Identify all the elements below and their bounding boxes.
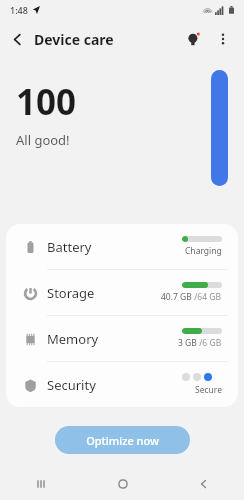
staticText: /6 GB [197, 337, 222, 349]
button[interactable]: Tips [178, 24, 208, 54]
staticText: Battery [47, 238, 92, 256]
staticText: All good! [16, 131, 70, 149]
button[interactable]: Home [82, 467, 163, 500]
button[interactable]: Storage [6, 270, 238, 315]
staticText: Device care [34, 30, 114, 49]
staticText: Optimize now [86, 433, 159, 448]
staticText: 100 [16, 78, 77, 126]
staticText: 1:48 [10, 4, 28, 16]
button[interactable]: Back [163, 467, 244, 500]
staticText: 3 GB [178, 337, 197, 349]
button[interactable]: Recent apps [0, 467, 82, 500]
button[interactable]: Back [0, 22, 34, 56]
staticText: /64 GB [192, 291, 222, 303]
staticText: Secure [195, 384, 222, 396]
button[interactable]: Security [6, 362, 238, 407]
staticText: Security [47, 376, 96, 394]
button[interactable]: Optimize now [55, 426, 190, 454]
staticText: 40.7 GB [161, 291, 192, 303]
staticText: Storage [47, 284, 95, 302]
button[interactable]: More options [208, 24, 238, 54]
staticText: Charging [185, 245, 222, 257]
staticText: Memory [47, 330, 99, 348]
button[interactable]: Memory [6, 316, 238, 361]
button[interactable]: Battery [6, 224, 238, 269]
